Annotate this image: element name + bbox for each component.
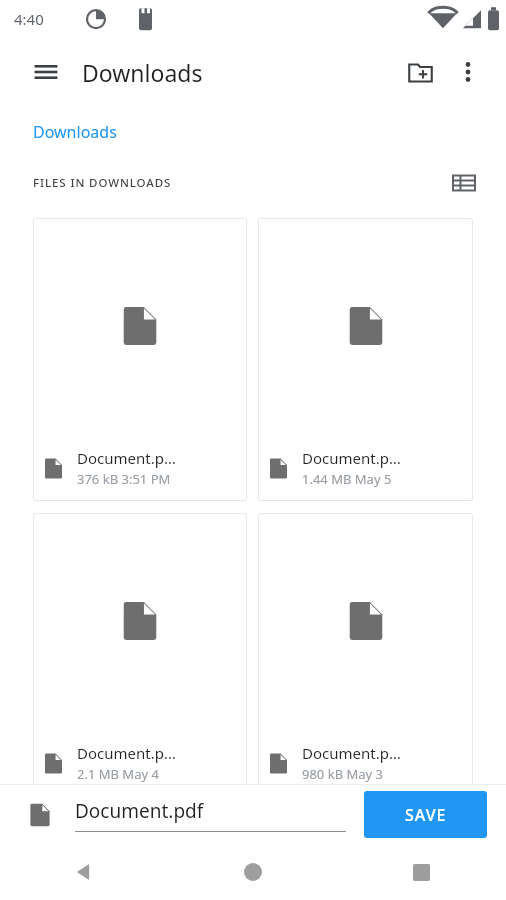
button[interactable]: Switch to list view — [444, 163, 484, 203]
staticText: 376 kB 3:51 PM — [77, 470, 171, 488]
button[interactable]: Create new folder — [396, 48, 444, 96]
staticText: Document.p… — [302, 743, 401, 763]
staticText: 4:40 — [14, 9, 44, 29]
button[interactable]: Back — [0, 844, 168, 900]
button[interactable]: Document.p… — [33, 513, 247, 796]
button[interactable]: Document.pdf — [75, 798, 346, 832]
staticText: 1.44 MB May 5 — [302, 470, 392, 488]
button[interactable]: Document.p… — [33, 218, 247, 501]
button[interactable]: SAVE — [364, 791, 487, 838]
button[interactable]: Recent apps — [337, 844, 506, 900]
button[interactable]: Downloads — [22, 113, 128, 151]
staticText: FILES IN DOWNLOADS — [33, 175, 172, 191]
staticText: Document.p… — [77, 448, 176, 468]
button[interactable]: Home — [168, 844, 337, 900]
staticText: SAVE — [405, 804, 447, 826]
button[interactable]: More options — [444, 48, 492, 96]
staticText: Document.p… — [77, 743, 176, 763]
staticText: Document.pdf — [75, 798, 204, 824]
staticText: Downloads — [82, 57, 203, 88]
staticText: 980 kB May 3 — [302, 765, 383, 783]
button[interactable]: Document.p… — [258, 513, 473, 796]
button[interactable]: Document.p… — [258, 218, 473, 501]
staticText: Downloads — [33, 121, 117, 143]
button[interactable]: Open navigation menu — [22, 48, 70, 96]
staticText: 2.1 MB May 4 — [77, 765, 159, 783]
staticText: Document.p… — [302, 448, 401, 468]
